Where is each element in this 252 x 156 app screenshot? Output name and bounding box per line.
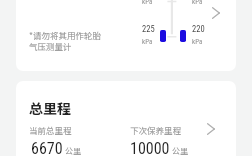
staticText: 公里 [65,145,81,156]
staticText: *请勿将其用作轮胎 [29,29,101,41]
staticText: kPa [192,0,203,6]
staticText: 总里程 [29,98,71,118]
staticText: kPa [192,38,203,46]
button[interactable]: 总里程 [16,81,236,156]
staticText: 公里 [172,145,188,156]
staticText: kPa [142,0,153,6]
staticText: 10000 [130,139,170,156]
staticText: 下次保养里程 [130,124,182,136]
staticText: 6670 [31,139,63,156]
button[interactable]: 胎压详情 [204,1,228,25]
staticText: 225 [142,24,155,34]
staticText: 当前总里程 [29,124,72,136]
button[interactable]: 保养详情 [199,117,223,141]
staticText: kPa [142,38,153,46]
staticText: 220 [192,24,205,34]
staticText: 气压测量计 [29,40,72,52]
button[interactable]: *请勿将其用作轮胎 [16,0,236,71]
